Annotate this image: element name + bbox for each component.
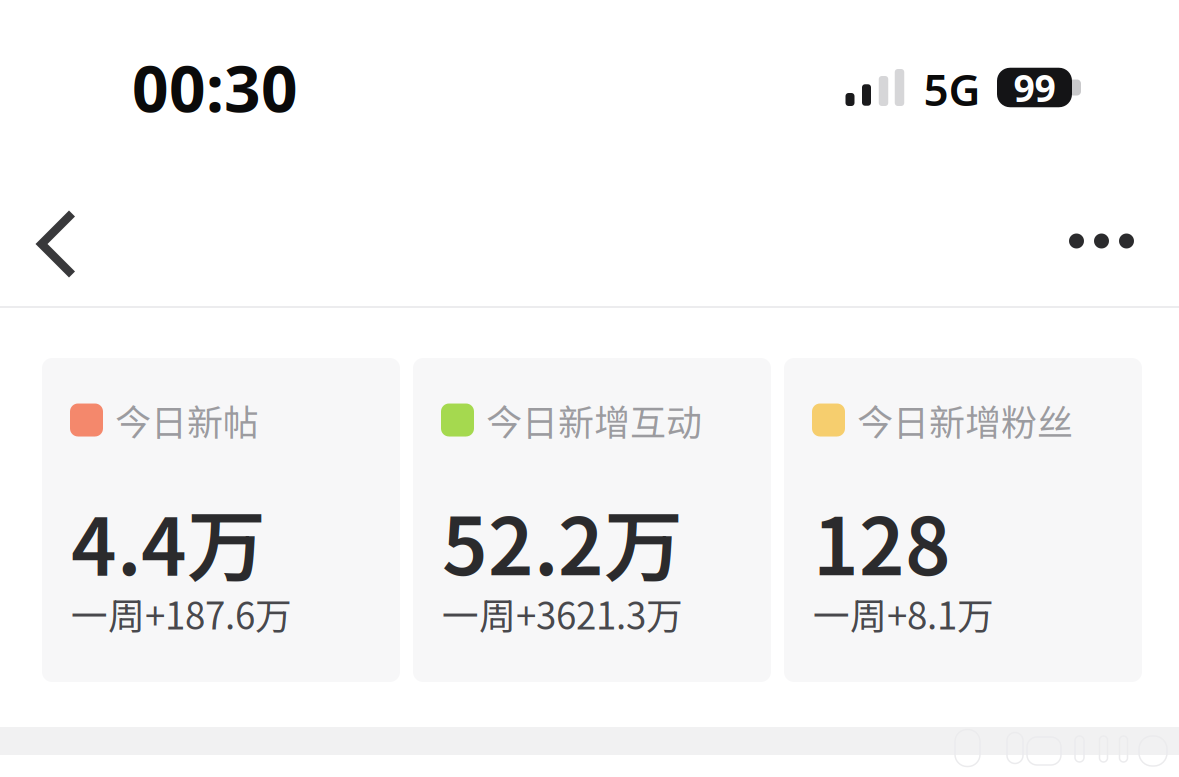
- staticText: 52.2万: [442, 484, 683, 598]
- button[interactable]: Back: [22, 204, 92, 284]
- staticText: 今日新帖: [115, 394, 259, 446]
- staticText: 128: [813, 484, 951, 598]
- button[interactable]: 今日新帖: [42, 358, 400, 682]
- staticText: 5G: [923, 60, 980, 118]
- staticText: 一周+187.6万: [71, 587, 292, 640]
- staticText: 一周+3621.3万: [442, 587, 683, 640]
- staticText: 今日新增粉丝: [857, 394, 1073, 446]
- button[interactable]: More: [1056, 202, 1146, 279]
- button[interactable]: 今日新增互动: [413, 358, 771, 682]
- staticText: 4.4万: [71, 484, 266, 598]
- staticText: 00:30: [132, 45, 298, 130]
- button[interactable]: 今日新增粉丝: [784, 358, 1142, 682]
- staticText: 今日新增互动: [486, 394, 702, 446]
- staticText: 99: [1013, 63, 1055, 112]
- staticText: 一周+8.1万: [813, 587, 994, 640]
